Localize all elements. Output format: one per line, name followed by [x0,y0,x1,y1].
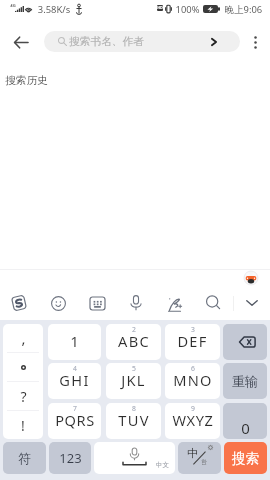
button[interactable]: 搜索书名、作者 [44,31,240,52]
button[interactable]: 5 [106,363,161,399]
button[interactable]: Space [94,442,175,474]
button[interactable]: Emoji [45,290,71,316]
staticText: 1 [70,331,79,351]
staticText: 100% [174,3,201,16]
staticText: 搜索历史 [5,74,48,87]
staticText: 3.58K/s [36,3,72,16]
button[interactable]: Search [200,289,226,315]
button[interactable]: Sogou input [6,290,32,316]
button[interactable]: 0 [223,403,267,439]
staticText: 晚上9:06 [223,3,264,16]
staticText: ! [21,416,25,435]
staticText: TUV [118,410,150,430]
staticText: 8 [132,404,136,413]
button[interactable]: 3 [165,324,220,360]
staticText: 123 [59,449,82,467]
button[interactable]: 2 [106,324,161,360]
staticText: DEF [177,331,208,351]
button[interactable]: 符 [3,442,46,474]
staticText: 7 [73,404,77,413]
staticText: 5 [132,364,136,373]
button[interactable]: 8 [106,403,161,439]
staticText: 한 [201,458,207,466]
button[interactable]: More options [243,28,267,56]
button[interactable]: Voice input [123,290,149,316]
staticText: 搜索 [232,450,259,467]
staticText: , [21,328,26,348]
button[interactable]: 4 [48,363,101,399]
staticText: 中 [187,446,198,460]
staticText: 9 [191,404,195,413]
button[interactable] [3,353,43,381]
staticText: ? [20,387,27,406]
button[interactable]: , [3,324,43,352]
button[interactable]: 123 [49,442,91,474]
button[interactable]: Hide keyboard [239,290,265,316]
button[interactable]: Handwriting [161,291,187,317]
button[interactable]: 7 [48,403,101,439]
staticText: 符 [18,450,31,466]
staticText: PQRS [55,410,95,430]
button[interactable]: 搜索 [224,442,267,474]
staticText: 0 [241,418,250,438]
staticText: GHI [59,370,90,390]
staticText: 3 [191,325,195,334]
button[interactable]: Keyboard layouts [84,290,110,316]
staticText: 中文 [156,461,169,469]
staticText: 4G [10,3,16,9]
button[interactable]: Back [7,28,35,56]
button[interactable]: Backspace [223,324,267,360]
staticText: 重输 [232,373,258,389]
button[interactable]: 1 [48,324,101,360]
staticText: HD [157,5,163,12]
staticText: 搜索书名、作者 [69,35,144,48]
button[interactable]: 9 [165,403,220,439]
button[interactable]: 6 [165,363,220,399]
staticText: 2 [132,325,136,334]
button[interactable]: 重输 [223,363,267,399]
button[interactable]: ? [3,382,43,410]
button[interactable]: Assistant [244,271,258,285]
staticText: JKL [121,370,146,390]
button[interactable]: ! [3,411,43,439]
staticText: WXYZ [172,410,214,430]
staticText: 6 [191,364,195,373]
button[interactable]: 中 [178,442,221,474]
staticText: ABC [118,331,150,351]
staticText: MNO [173,370,213,390]
staticText: 4 [73,364,77,373]
